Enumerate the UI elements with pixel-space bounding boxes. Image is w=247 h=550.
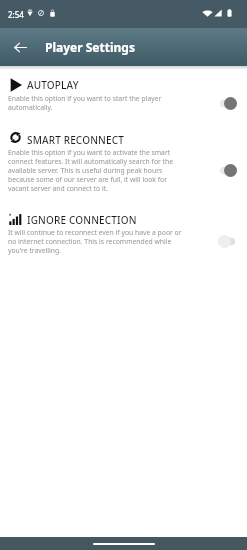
staticText: 2:54 — [8, 9, 24, 20]
staticText: It will continue to reconnect even if yo… — [8, 228, 189, 255]
staticText: AUTOPLAY — [27, 78, 79, 92]
staticText: SMART RECONNECT — [27, 133, 124, 147]
staticText: IGNORE CONNECTION — [27, 213, 137, 227]
button[interactable]: Back — [6, 33, 34, 61]
button[interactable]: Toggle on — [218, 164, 237, 177]
staticText: Enable this option if you want to start … — [8, 94, 189, 112]
staticText: Player Settings — [45, 39, 135, 55]
button[interactable]: Toggle off — [218, 235, 237, 248]
staticText: Enable this option if you want to activa… — [8, 148, 189, 193]
button[interactable]: Toggle on — [218, 97, 237, 110]
